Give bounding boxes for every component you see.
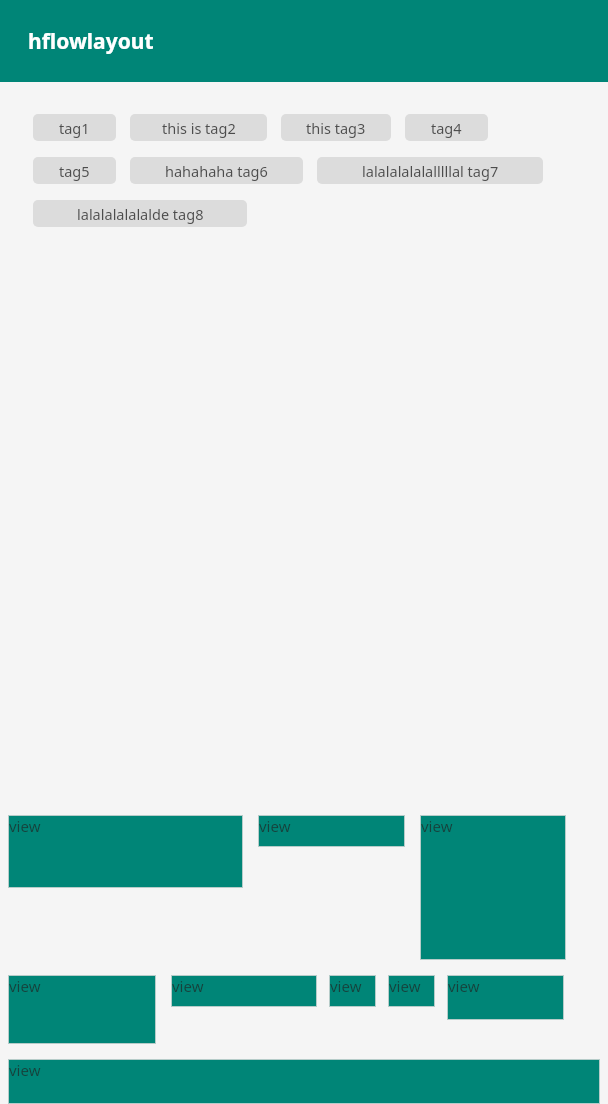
staticText: this is tag2 (162, 118, 236, 138)
button[interactable]: view (330, 976, 375, 1006)
staticText: hflowlayout (28, 27, 154, 56)
button[interactable]: lalalalalalalllllal tag7 (317, 157, 543, 184)
button[interactable]: view (9, 816, 242, 887)
button[interactable]: lalalalalalalde tag8 (33, 200, 247, 227)
staticText: view (448, 976, 480, 996)
button[interactable]: tag4 (405, 114, 488, 141)
staticText: tag4 (431, 118, 462, 138)
button[interactable]: tag5 (33, 157, 116, 184)
staticText: this tag3 (306, 118, 366, 138)
staticText: view (421, 816, 453, 836)
button[interactable]: view (9, 976, 155, 1043)
button[interactable]: view (389, 976, 434, 1006)
staticText: tag5 (59, 161, 90, 181)
staticText: view (9, 1060, 41, 1080)
button[interactable]: view (448, 976, 563, 1019)
staticText: tag1 (59, 118, 90, 138)
staticText: view (259, 816, 291, 836)
staticText: view (9, 976, 41, 996)
button[interactable]: view (421, 816, 565, 959)
staticText: hahahaha tag6 (165, 161, 268, 181)
staticText: lalalalalalalllllal tag7 (362, 161, 499, 181)
staticText: view (9, 816, 41, 836)
staticText: view (172, 976, 204, 996)
staticText: lalalalalalalde tag8 (77, 204, 204, 224)
button[interactable]: this is tag2 (130, 114, 267, 141)
button[interactable]: hahahaha tag6 (130, 157, 303, 184)
button[interactable]: this tag3 (281, 114, 391, 141)
button[interactable]: tag1 (33, 114, 116, 141)
staticText: view (389, 976, 421, 996)
button[interactable]: view (259, 816, 404, 846)
button[interactable]: view (9, 1060, 599, 1103)
staticText: view (330, 976, 362, 996)
button[interactable]: view (172, 976, 316, 1006)
